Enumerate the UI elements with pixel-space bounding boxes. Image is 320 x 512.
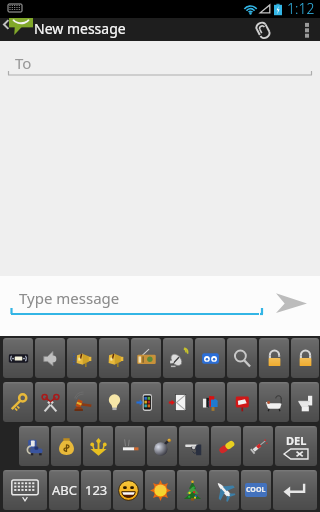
button[interactable]: 123 (81, 470, 111, 510)
button[interactable]: Christmas tree (177, 470, 207, 510)
staticText: 1:12 (287, 0, 315, 17)
button[interactable]: Mute (35, 338, 65, 378)
button[interactable]: Radio (131, 338, 161, 378)
button[interactable]: Enter (273, 470, 317, 510)
button[interactable]: Mobile phone (131, 382, 161, 422)
button[interactable]: Send (260, 276, 320, 336)
button[interactable]: Hammer (67, 382, 97, 422)
button[interactable]: Trident (83, 426, 113, 466)
button[interactable]: More options (294, 18, 320, 41)
button[interactable]: Smiley (113, 470, 143, 510)
button[interactable]: Airplane (209, 470, 239, 510)
button[interactable]: To (0, 41, 320, 76)
button[interactable]: Speaker (67, 338, 97, 378)
button[interactable]: Keyboard (3, 470, 47, 510)
button[interactable]: Type message (0, 276, 260, 336)
button[interactable]: Attach (246, 18, 280, 41)
button[interactable]: Bathtub (259, 382, 289, 422)
button[interactable]: Delete (275, 426, 317, 466)
staticText: Type message (19, 288, 120, 308)
button[interactable]: Toilet (291, 382, 319, 422)
button[interactable]: Vibration mode (195, 338, 225, 378)
button[interactable]: Sun (145, 470, 175, 510)
button[interactable]: Syringe (243, 426, 273, 466)
button[interactable]: Seat (19, 426, 49, 466)
button[interactable]: Unlocked (259, 338, 289, 378)
button[interactable]: Mailbox (195, 382, 225, 422)
staticText: COOL (246, 485, 266, 495)
button[interactable]: Satellite (163, 338, 193, 378)
button[interactable]: Cool (241, 470, 271, 510)
button[interactable]: Light bulb (99, 382, 129, 422)
button[interactable]: Search (227, 338, 257, 378)
button[interactable]: Navigate up (0, 18, 145, 41)
button[interactable]: Cassette (3, 338, 33, 378)
button[interactable]: Cigarette (115, 426, 145, 466)
button[interactable]: Pistol (179, 426, 209, 466)
staticText: 123 (85, 481, 108, 499)
button[interactable]: Scissors (35, 382, 65, 422)
button[interactable]: Bomb (147, 426, 177, 466)
button[interactable]: Pill (211, 426, 241, 466)
button[interactable]: Key (3, 382, 33, 422)
button[interactable]: ABC (49, 470, 79, 510)
button[interactable]: Incoming envelope (163, 382, 193, 422)
staticText: To (15, 53, 32, 73)
button[interactable]: Postbox (227, 382, 257, 422)
staticText: DEL (286, 433, 307, 448)
staticText: New message (34, 19, 126, 38)
staticText: ABC (52, 481, 77, 499)
button[interactable]: Loudspeaker (99, 338, 129, 378)
button[interactable]: Locked (291, 338, 319, 378)
button[interactable]: Money bag (51, 426, 81, 466)
